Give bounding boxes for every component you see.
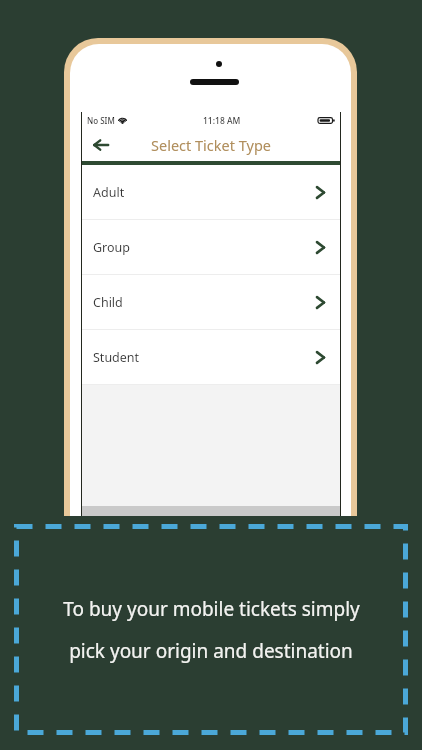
staticText: Group [93, 239, 130, 256]
staticText: 11:18 AM [203, 115, 241, 127]
button[interactable]: Group [82, 220, 340, 274]
button[interactable]: Back [90, 134, 112, 156]
staticText: Adult [93, 184, 125, 201]
button[interactable]: Student [82, 330, 340, 384]
button[interactable]: Adult [82, 165, 340, 219]
staticText: Select Ticket Type [151, 135, 271, 155]
button[interactable]: Child [82, 275, 340, 329]
staticText: pick your origin and destination [69, 638, 353, 664]
staticText: To buy your mobile tickets simply [63, 596, 360, 622]
staticText: No SIM [87, 115, 115, 126]
staticText: Child [93, 294, 123, 311]
staticText: Student [93, 349, 140, 366]
